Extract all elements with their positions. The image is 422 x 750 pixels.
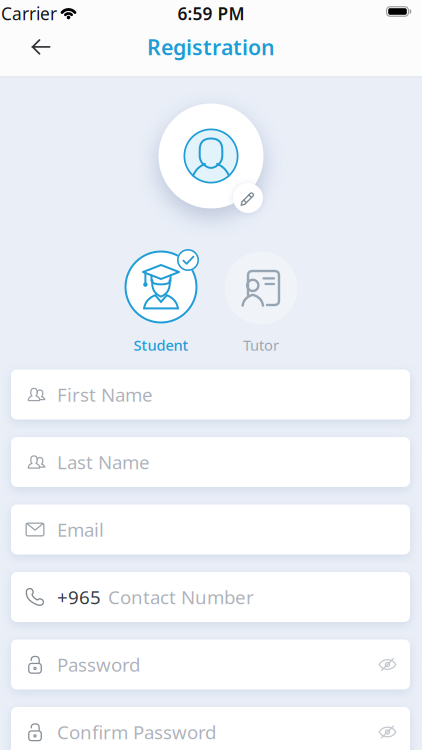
button[interactable]: +965 — [11, 572, 410, 622]
staticText: Student — [133, 335, 188, 355]
button[interactable]: Confirm Password — [11, 707, 410, 750]
button[interactable]: Last Name — [11, 437, 410, 487]
button[interactable]: Show password — [369, 646, 405, 682]
staticText: Carrier — [1, 2, 57, 25]
button[interactable]: Password — [11, 639, 410, 689]
button[interactable]: Tutor — [224, 251, 297, 324]
staticText: 6:59 PM — [177, 2, 244, 25]
button[interactable]: Edit photo — [233, 183, 263, 213]
staticText: Confirm Password — [57, 720, 216, 744]
staticText: Last Name — [57, 450, 150, 474]
staticText: Registration — [147, 33, 275, 61]
staticText: Email — [57, 517, 104, 542]
staticText: Tutor — [243, 335, 279, 355]
button[interactable]: Email — [11, 504, 410, 554]
staticText: Password — [57, 652, 140, 677]
staticText: Contact Number — [108, 585, 254, 609]
button[interactable]: Back — [14, 30, 58, 64]
button[interactable]: Profile photo — [158, 103, 263, 208]
staticText: +965 — [57, 585, 101, 609]
button[interactable]: Student — [124, 250, 197, 323]
button[interactable]: First Name — [11, 369, 410, 419]
button[interactable]: Show confirm password — [369, 714, 405, 750]
staticText: First Name — [57, 382, 153, 407]
